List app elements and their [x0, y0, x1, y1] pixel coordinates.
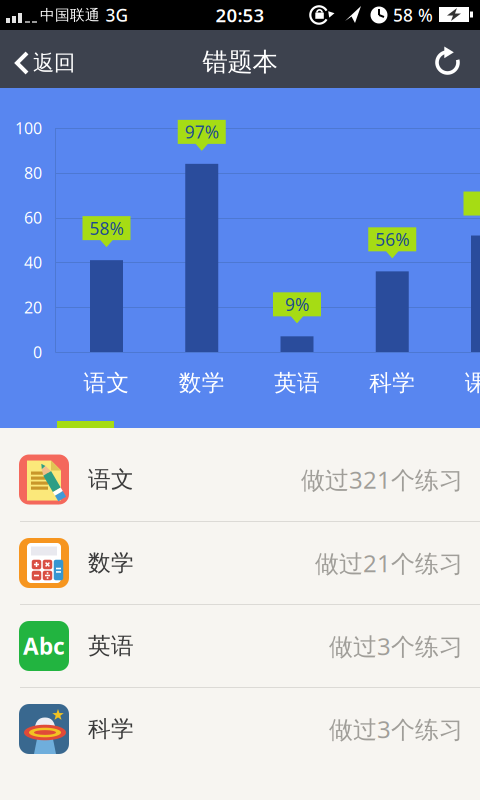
staticText: 80 — [24, 162, 42, 183]
staticText: 错题本 — [202, 46, 277, 77]
staticText: 课外 — [464, 369, 480, 397]
staticText: 科学 — [88, 715, 134, 743]
staticText: 97% — [185, 120, 219, 143]
staticText: 做过21个练习 — [315, 547, 463, 579]
staticText: 做过3个练习 — [329, 713, 463, 745]
staticText: 100 — [15, 117, 42, 139]
staticText: 做过3个练习 — [329, 630, 463, 662]
staticText: 20 — [24, 297, 42, 318]
staticText: 60 — [24, 207, 42, 228]
staticText: 58 % — [393, 3, 433, 26]
staticText: 语文 — [88, 466, 134, 493]
staticText: 58% — [89, 217, 123, 240]
staticText: 数学 — [179, 369, 225, 397]
staticText: 20:53 — [215, 3, 264, 27]
staticText: 40 — [24, 252, 42, 273]
button[interactable]: 语文 — [0, 438, 480, 521]
staticText: 语文 — [83, 369, 129, 397]
staticText: 英语 — [88, 632, 134, 660]
button[interactable]: Abc — [0, 605, 480, 687]
staticText: 3G — [105, 3, 128, 26]
staticText: 返回 — [33, 50, 75, 76]
staticText: 数学 — [88, 549, 134, 577]
button[interactable] — [423, 30, 471, 88]
staticText: 英语 — [274, 369, 320, 397]
button[interactable]: 返回 — [0, 30, 90, 88]
staticText: 科学 — [369, 369, 415, 397]
staticText: 56% — [375, 228, 409, 251]
staticText: 9% — [285, 293, 309, 316]
staticText: 0 — [33, 341, 42, 363]
staticText: 中国联通 — [40, 6, 100, 24]
button[interactable]: 科学 — [0, 688, 480, 770]
staticText: 做过321个练习 — [301, 464, 463, 495]
staticText: Abc — [23, 631, 65, 661]
button[interactable]: 数学 — [0, 522, 480, 604]
